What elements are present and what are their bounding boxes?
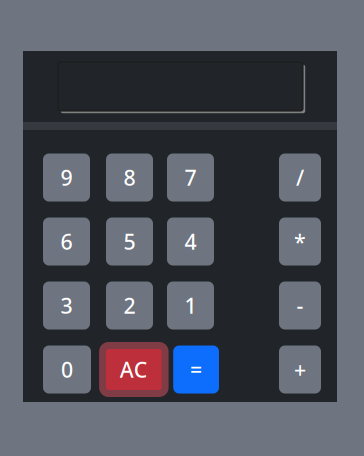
button[interactable]: 3 — [43, 281, 90, 329]
button[interactable]: + — [279, 345, 321, 393]
staticText: - — [296, 291, 303, 320]
button[interactable]: 6 — [43, 217, 90, 265]
staticText: * — [294, 227, 306, 256]
staticText: 9 — [60, 163, 72, 192]
button[interactable]: 8 — [106, 153, 153, 201]
button[interactable]: 1 — [167, 281, 214, 329]
staticText: AC — [120, 355, 148, 384]
staticText: 2 — [123, 291, 135, 320]
staticText: 0 — [61, 355, 73, 384]
staticText: 8 — [123, 163, 135, 192]
button[interactable]: 9 — [43, 153, 90, 201]
button[interactable]: 4 — [167, 217, 214, 265]
staticText: + — [294, 355, 306, 384]
staticText: 1 — [184, 291, 196, 320]
button[interactable]: 5 — [106, 217, 153, 265]
button[interactable]: - — [279, 281, 321, 329]
staticText: 5 — [123, 227, 135, 256]
button[interactable]: = — [173, 345, 219, 393]
button[interactable]: / — [279, 153, 321, 201]
button[interactable]: * — [279, 217, 321, 265]
staticText: 3 — [60, 291, 72, 320]
staticText: / — [296, 163, 304, 192]
button[interactable]: 0 — [43, 345, 91, 393]
button[interactable]: 7 — [167, 153, 214, 201]
staticText: 7 — [184, 163, 196, 192]
button[interactable]: AC — [103, 345, 165, 393]
button[interactable]: 2 — [106, 281, 153, 329]
staticText: 6 — [60, 227, 72, 256]
staticText: 4 — [184, 227, 196, 256]
staticText: = — [190, 355, 202, 384]
